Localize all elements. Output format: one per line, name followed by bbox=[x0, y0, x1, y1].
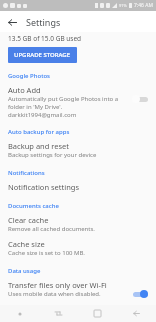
staticText: Clear cache bbox=[8, 215, 49, 225]
staticText: Auto backup for apps bbox=[8, 128, 70, 136]
staticText: Backup and reset bbox=[8, 141, 69, 151]
staticText: Notifications bbox=[8, 169, 45, 177]
staticText: Transfer files only over Wi-Fi bbox=[8, 280, 107, 290]
button[interactable]: Auto Add bbox=[130, 93, 150, 105]
staticText: folder in 'My Drive'. bbox=[8, 103, 63, 111]
staticText: Uses mobile data when disabled. bbox=[8, 290, 101, 298]
button[interactable]: Recent apps bbox=[39, 305, 78, 322]
staticText: Google Photos bbox=[8, 72, 51, 80]
button[interactable]: Home bbox=[78, 305, 117, 322]
button[interactable]: Back bbox=[117, 305, 156, 322]
staticText: Settings bbox=[26, 16, 61, 28]
button[interactable]: Backup and reset bbox=[0, 140, 156, 164]
staticText: 91% bbox=[119, 3, 127, 8]
button[interactable]: Auto Add bbox=[0, 84, 156, 123]
staticText: Remove all cached documents. bbox=[8, 225, 95, 233]
staticText: Notification settings bbox=[8, 182, 79, 192]
button[interactable]: Notification settings bbox=[0, 181, 156, 197]
button[interactable]: Menu bbox=[0, 305, 39, 322]
staticText: 7:46 AM bbox=[134, 2, 153, 9]
staticText: Cache size bbox=[8, 239, 45, 249]
staticText: 13.5 GB of 15.0 GB used bbox=[8, 34, 82, 43]
staticText: Backup settings for your device bbox=[8, 151, 97, 159]
button[interactable]: Clear cache bbox=[0, 214, 156, 238]
staticText: Automatically put Google Photos into a bbox=[8, 95, 119, 103]
button[interactable]: Transfer files only over Wi-Fi bbox=[130, 288, 150, 300]
staticText: Auto Add bbox=[8, 85, 41, 95]
staticText: Documents cache bbox=[8, 202, 59, 210]
staticText: UPGRADE STORAGE bbox=[14, 51, 71, 59]
button[interactable]: Cache size bbox=[0, 238, 156, 262]
staticText: darkkit1994@gmail.com bbox=[8, 111, 77, 119]
button[interactable]: Back bbox=[4, 14, 20, 30]
button[interactable]: UPGRADE STORAGE bbox=[8, 47, 77, 63]
staticText: Data usage bbox=[8, 267, 41, 275]
staticText: Cache size is set to 100 MB. bbox=[8, 249, 85, 257]
button[interactable]: Transfer files only over Wi-Fi bbox=[0, 279, 156, 304]
